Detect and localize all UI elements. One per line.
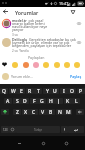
button[interactable]: Back: [14, 138, 24, 148]
button[interactable]: Emoji 2: [21, 60, 30, 69]
staticText: P: [79, 88, 83, 94]
button[interactable]: Y: [43, 88, 51, 94]
button[interactable]: N: [56, 109, 64, 115]
button[interactable]: 123: [1, 126, 9, 133]
button[interactable]: Backspace: [76, 109, 84, 115]
staticText: B: [49, 109, 53, 115]
staticText: K: [66, 98, 70, 104]
staticText: Q: [2, 88, 6, 94]
button[interactable]: G: [38, 98, 46, 104]
staticText: V: [41, 109, 45, 115]
button[interactable]: Space: [16, 126, 60, 133]
button[interactable]: H: [47, 98, 55, 104]
button[interactable]: D: [21, 98, 29, 104]
button[interactable]: model.tr çok yaşa! onarıcı bakım kremi n…: [0, 18, 85, 37]
button[interactable]: Deliloglu Gerçekten arkadaşlar bu çok kı…: [0, 37, 85, 53]
button[interactable]: Emoji 7: [72, 60, 81, 69]
button[interactable]: A: [4, 98, 12, 104]
staticText: Yorum ekle...: [11, 74, 33, 79]
staticText: A: [6, 98, 10, 104]
staticText: G: [40, 98, 44, 104]
button[interactable]: Yorum ekle...: [11, 74, 69, 79]
staticText: Y: [46, 88, 49, 94]
staticText: U: [53, 88, 57, 94]
button[interactable]: Home: [38, 138, 48, 148]
button[interactable]: Paylaş: [69, 74, 83, 79]
staticText: 15:47: [59, 1, 69, 6]
staticText: Deliloglu Gerçekten arkadaşlar bu çok kı…: [12, 37, 76, 48]
staticText: H: [49, 98, 53, 104]
button[interactable]: X: [22, 109, 30, 115]
button[interactable]: W: [9, 88, 17, 94]
button[interactable]: Like: [76, 40, 82, 46]
staticText: T: [37, 88, 40, 94]
staticText: M: [66, 109, 71, 115]
button[interactable]: Emoji 4: [41, 60, 50, 69]
button[interactable]: Z: [13, 109, 21, 115]
staticText: Türkçe: [34, 128, 43, 132]
button[interactable]: Back: [0, 7, 10, 16]
button[interactable]: T: [34, 88, 42, 94]
button[interactable]: Like: [76, 21, 82, 27]
button[interactable]: F: [30, 98, 38, 104]
button[interactable]: Heart: [0, 60, 9, 69]
staticText: C: [32, 109, 36, 115]
staticText: 2 sa Yanıtla: [12, 49, 29, 53]
button[interactable]: I: [60, 88, 68, 94]
staticText: 3 sa: [12, 33, 18, 37]
staticText: L: [75, 98, 78, 104]
button[interactable]: Emoji 1: [10, 60, 19, 69]
button[interactable]: Enter: [68, 126, 84, 133]
button[interactable]: B: [47, 109, 55, 115]
button[interactable]: S: [13, 98, 21, 104]
button[interactable]: Emoji: [9, 126, 16, 133]
button[interactable]: P: [77, 88, 85, 94]
staticText: S: [16, 98, 19, 104]
button[interactable]: R: [26, 88, 34, 94]
staticText: X: [24, 109, 28, 115]
staticText: R: [28, 88, 32, 94]
button[interactable]: L: [72, 98, 80, 104]
staticText: W: [11, 88, 16, 94]
staticText: J: [58, 98, 60, 104]
staticText: I: [63, 88, 65, 94]
button[interactable]: V: [39, 109, 47, 115]
button[interactable]: Emoji 6: [62, 60, 71, 69]
staticText: O: [70, 88, 74, 94]
staticText: Yorumlar: [15, 9, 39, 16]
staticText: E: [20, 88, 23, 94]
staticText: 123: [3, 128, 8, 132]
staticText: Z: [16, 109, 19, 115]
button[interactable]: Recent apps: [61, 138, 71, 148]
button[interactable]: J: [55, 98, 63, 104]
staticText: Paylaş: [70, 74, 82, 79]
button[interactable]: Voice input: [61, 126, 68, 133]
button[interactable]: E: [17, 88, 25, 94]
staticText: D: [23, 98, 27, 104]
button[interactable]: Emoji 5: [52, 60, 61, 69]
button[interactable]: Shift: [1, 109, 9, 115]
button[interactable]: K: [64, 98, 72, 104]
button[interactable]: Share: [68, 7, 78, 16]
button[interactable]: Q: [0, 88, 8, 94]
button[interactable]: O: [68, 88, 76, 94]
staticText: F: [33, 98, 36, 104]
staticText: model.tr çok yaşa! onarıcı bakım kremi n…: [12, 18, 51, 32]
button[interactable]: C: [30, 109, 38, 115]
staticText: Paylaşılan: [28, 55, 45, 60]
button[interactable]: Emoji 3: [31, 60, 40, 69]
staticText: N: [58, 109, 62, 115]
button[interactable]: M: [64, 109, 72, 115]
button[interactable]: U: [51, 88, 59, 94]
